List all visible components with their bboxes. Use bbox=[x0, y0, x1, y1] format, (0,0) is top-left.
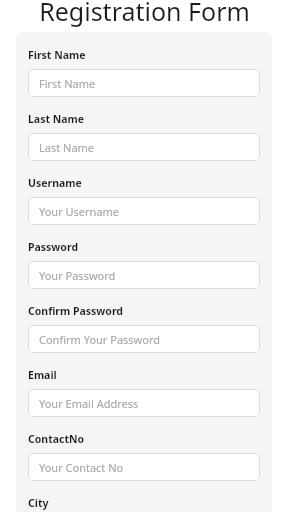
button[interactable]: ContactNo bbox=[28, 453, 260, 481]
staticText: First Name bbox=[39, 76, 96, 91]
staticText: Your Username bbox=[39, 204, 120, 219]
staticText: Password bbox=[28, 240, 79, 254]
staticText: Confirm Your Password bbox=[39, 332, 160, 347]
staticText: Confirm Password bbox=[28, 304, 124, 318]
button[interactable]: Confirm Password bbox=[28, 325, 260, 353]
staticText: Registration Form bbox=[39, 0, 250, 28]
button[interactable]: First Name bbox=[28, 69, 260, 97]
staticText: First Name bbox=[28, 48, 86, 62]
button[interactable]: Last Name bbox=[28, 133, 260, 161]
staticText: Last Name bbox=[39, 140, 95, 155]
staticText: City bbox=[28, 496, 49, 510]
staticText: Your Contact No bbox=[39, 460, 124, 475]
staticText: Username bbox=[28, 176, 82, 190]
staticText: Your Email Address bbox=[39, 396, 139, 411]
staticText: Last Name bbox=[28, 112, 85, 126]
staticText: ContactNo bbox=[28, 432, 85, 446]
button[interactable]: Username bbox=[28, 197, 260, 225]
staticText: Your Password bbox=[39, 268, 116, 283]
button[interactable]: Email bbox=[28, 389, 260, 417]
staticText: Email bbox=[28, 368, 57, 382]
button[interactable]: Password bbox=[28, 261, 260, 289]
